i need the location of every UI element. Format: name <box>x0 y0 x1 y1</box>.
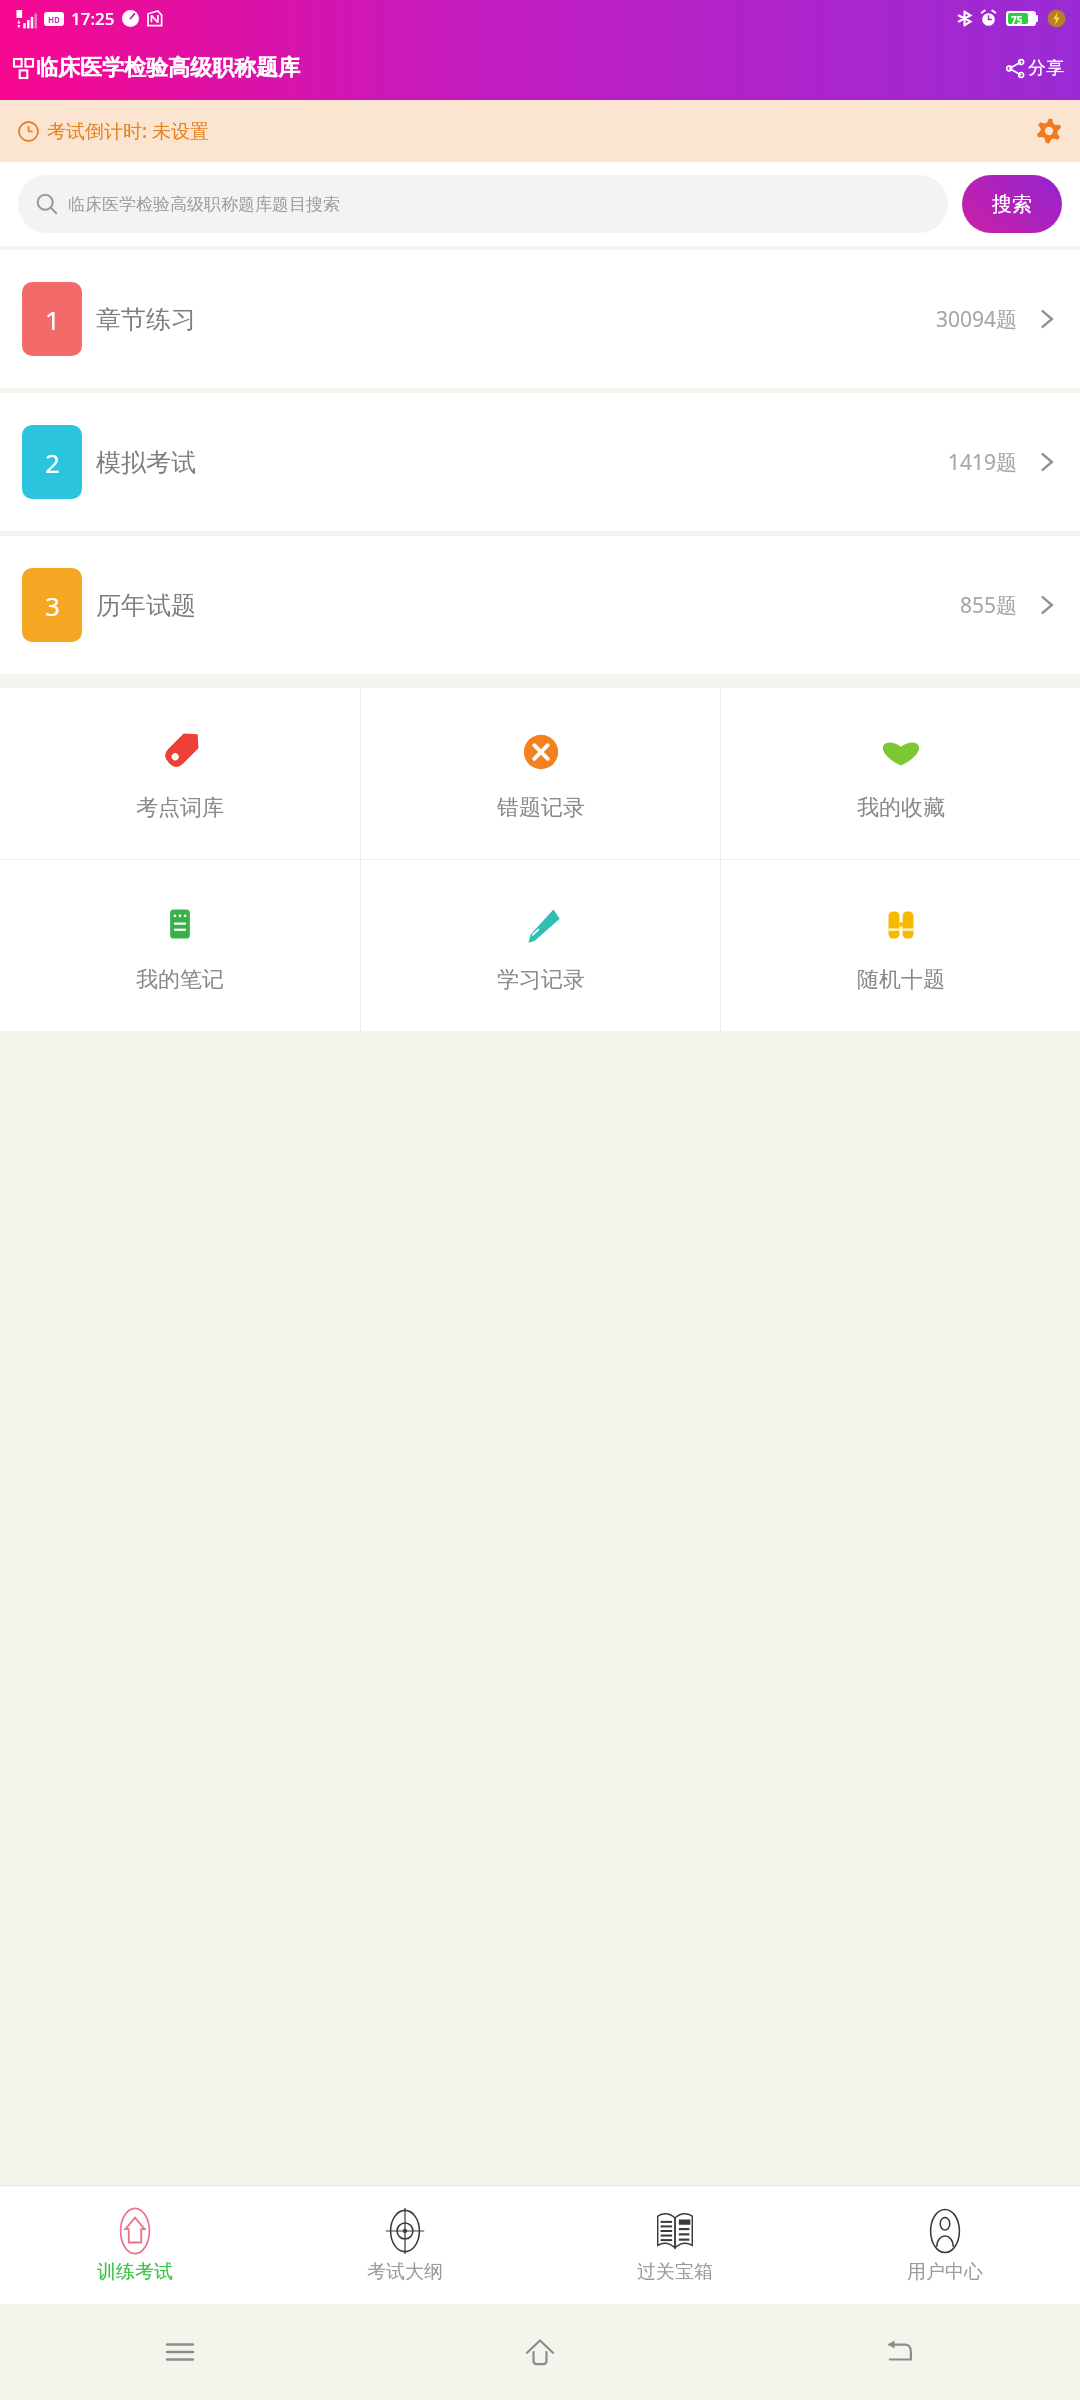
staticText: 训练考试 <box>97 2260 173 2284</box>
button[interactable]: 考试大纲 <box>270 2186 540 2304</box>
staticText: 我的笔记 <box>136 966 224 994</box>
staticText: 30094题 <box>936 305 1018 334</box>
staticText: 2 <box>45 445 60 480</box>
other: Back <box>883 2335 917 2369</box>
button[interactable]: 设置倒计时 <box>1018 104 1080 158</box>
staticText: 考试大纲 <box>367 2260 443 2284</box>
staticText: 我的收藏 <box>857 794 945 822</box>
staticText: 1419题 <box>948 448 1018 477</box>
other: Home <box>522 2334 558 2370</box>
staticText: 17:25 <box>71 7 115 30</box>
staticText: 章节练习 <box>96 304 196 335</box>
staticText: 错题记录 <box>497 794 585 822</box>
button[interactable]: 错题记录 <box>361 688 720 859</box>
button[interactable]: 搜索 <box>962 175 1062 233</box>
staticText: 模拟考试 <box>96 447 196 478</box>
button[interactable]: 1 <box>0 250 1080 388</box>
staticText: 855题 <box>960 591 1018 620</box>
staticText: 考点词库 <box>136 794 224 822</box>
button[interactable]: 考点词库 <box>0 688 360 859</box>
staticText: 75 <box>1011 13 1023 24</box>
staticText: 考试倒计时: 未设置 <box>47 118 210 144</box>
button[interactable]: 3 <box>0 536 1080 674</box>
button[interactable]: 随机十题 <box>721 860 1080 1031</box>
button[interactable]: 训练考试 <box>0 2186 270 2304</box>
other: Recents <box>163 2335 197 2369</box>
staticText: 用户中心 <box>907 2260 983 2284</box>
button[interactable]: 学习记录 <box>361 860 720 1031</box>
staticText: 临床医学检验高级职称题库题目搜索 <box>68 194 340 215</box>
button[interactable]: 考试倒计时: 未设置 <box>0 100 1080 162</box>
button[interactable]: 过关宝箱 <box>540 2186 810 2304</box>
button[interactable]: 2 <box>0 393 1080 531</box>
staticText: 历年试题 <box>96 590 196 621</box>
staticText: 过关宝箱 <box>637 2260 713 2284</box>
staticText: 1 <box>45 302 60 337</box>
button[interactable]: 我的笔记 <box>0 860 360 1031</box>
staticText: 学习记录 <box>497 966 585 994</box>
staticText: 分享 <box>1028 57 1064 80</box>
staticText: 3 <box>45 588 60 623</box>
staticText: 搜索 <box>992 192 1032 217</box>
button[interactable]: 临床医学检验高级职称题库题目搜索 <box>18 175 948 233</box>
button[interactable]: 我的收藏 <box>721 688 1080 859</box>
staticText: 临床医学检验高级职称题库 <box>36 54 300 82</box>
staticText: 随机十题 <box>857 966 945 994</box>
staticText: HD <box>48 14 60 25</box>
button[interactable]: 分享 <box>990 47 1080 90</box>
button[interactable]: 用户中心 <box>810 2186 1080 2304</box>
